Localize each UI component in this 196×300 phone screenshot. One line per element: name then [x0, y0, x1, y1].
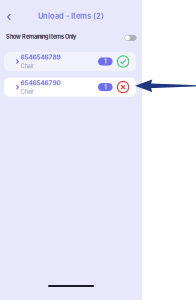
staticText: Chair — [20, 88, 33, 95]
staticText: Unload - Items (2) — [38, 11, 104, 20]
staticText: Show Remaining Items Only — [6, 33, 76, 40]
staticText: 1 — [104, 58, 106, 65]
button[interactable]: Back — [2, 10, 16, 24]
button[interactable]: 6546546789 — [4, 52, 136, 71]
staticText: 6546546789 — [20, 53, 60, 61]
button[interactable]: Show Remaining Items Only — [124, 35, 137, 41]
staticText: 1 — [104, 84, 106, 90]
button[interactable]: 6546546790 — [4, 78, 136, 97]
staticText: 6546546790 — [20, 79, 60, 87]
staticText: Chair — [20, 63, 33, 70]
